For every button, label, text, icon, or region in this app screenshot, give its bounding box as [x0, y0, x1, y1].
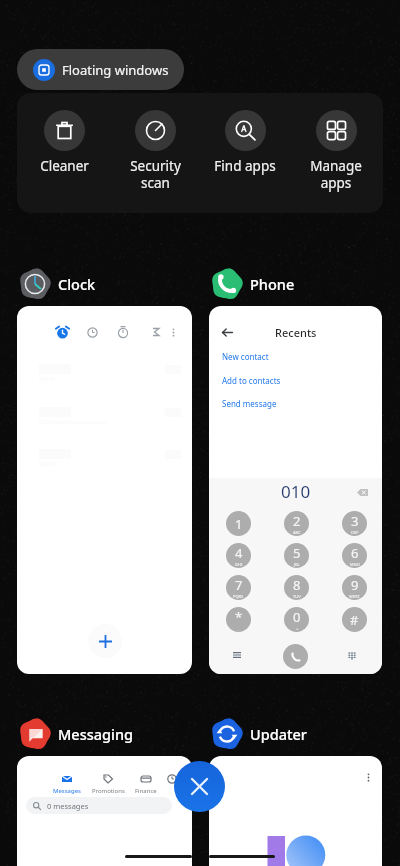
staticText: MNO [350, 562, 360, 567]
button[interactable]: Messaging [17, 712, 134, 756]
staticText: 8 [293, 576, 301, 594]
staticText: Manage apps [310, 157, 362, 192]
staticText: JKL [294, 562, 300, 567]
button[interactable]: Security scan [112, 93, 198, 192]
button[interactable]: Promotions [88, 774, 128, 795]
staticText: 1 [235, 515, 243, 533]
button[interactable]: Call history [227, 645, 247, 665]
button[interactable]: More options [209, 756, 382, 866]
button[interactable]: 3 [342, 511, 367, 536]
button[interactable]: * [226, 607, 251, 632]
staticText: 9 [351, 576, 359, 594]
button[interactable]: Find apps [202, 93, 288, 175]
staticText: 4 [235, 544, 243, 562]
staticText: PQRS [233, 594, 244, 599]
staticText: * [235, 608, 243, 626]
button[interactable] [152, 774, 192, 787]
staticText: 010 [281, 480, 311, 503]
staticText: WXYZ [349, 594, 360, 599]
staticText: TUV [293, 594, 301, 599]
button[interactable]: 9 [342, 575, 367, 600]
button[interactable]: Add alarm [88, 624, 122, 658]
button[interactable]: Search messages [26, 797, 172, 814]
button[interactable]: 0 [284, 607, 309, 632]
staticText: 7 [235, 576, 243, 594]
button[interactable]: Manage apps [293, 93, 379, 192]
button[interactable]: More options [161, 320, 185, 344]
staticText: 0 messages [47, 801, 89, 811]
button[interactable]: 2 [284, 511, 309, 536]
button[interactable]: 8 [284, 575, 309, 600]
staticText: GHI [235, 562, 243, 567]
staticText: Cleaner [40, 157, 89, 175]
staticText: Messaging [58, 724, 134, 744]
button[interactable]: # [342, 607, 367, 632]
staticText: + [296, 626, 299, 631]
button[interactable]: More options [361, 770, 375, 784]
button[interactable]: 6 [342, 543, 367, 568]
staticText: 0 [293, 608, 301, 626]
staticText: Phone [250, 274, 295, 294]
button[interactable]: Phone [209, 262, 295, 306]
staticText: Promotions [92, 787, 125, 795]
button[interactable]: Stopwatch [111, 320, 135, 344]
button[interactable]: Call [283, 644, 308, 669]
staticText: Updater [250, 724, 307, 744]
button[interactable]: Close all [174, 761, 225, 812]
button[interactable]: Alarm [17, 306, 192, 674]
staticText: Security scan [130, 157, 181, 192]
button[interactable]: Floating windows [17, 49, 184, 90]
button[interactable]: Messages [47, 774, 87, 795]
staticText: DEF [351, 530, 359, 535]
staticText: 3 [351, 512, 359, 530]
button[interactable]: Messages [17, 756, 192, 866]
button[interactable]: Alarm [50, 320, 74, 344]
staticText: 2 [293, 512, 301, 530]
button[interactable]: Finance [126, 774, 166, 795]
staticText: New contact [222, 351, 269, 362]
staticText: 5 [293, 544, 301, 562]
staticText: Add to contacts [222, 375, 281, 386]
staticText: Floating windows [62, 61, 169, 79]
button[interactable]: Send message [222, 398, 277, 409]
button[interactable]: 4 [226, 543, 251, 568]
button[interactable]: Clock [17, 262, 96, 306]
button[interactable]: Clock [80, 320, 104, 344]
button[interactable]: 5 [284, 543, 309, 568]
button[interactable]: Backspace [355, 485, 369, 499]
staticText: Finance [135, 787, 157, 795]
button[interactable]: 1 [226, 511, 251, 536]
staticText: Send message [222, 398, 277, 409]
staticText: Messages [53, 787, 81, 795]
staticText: , [238, 626, 240, 631]
button[interactable]: New contact [222, 351, 269, 362]
button[interactable]: 7 [226, 575, 251, 600]
button[interactable]: Timer [144, 320, 168, 344]
button[interactable]: Add to contacts [222, 375, 281, 386]
button[interactable]: Keypad [342, 645, 362, 665]
staticText: # [350, 611, 359, 629]
staticText: 6 [351, 544, 359, 562]
button[interactable]: Updater [209, 712, 307, 756]
staticText: ABC [293, 530, 301, 535]
button[interactable]: Cleaner [21, 93, 107, 175]
staticText: Clock [58, 274, 96, 294]
staticText: Find apps [214, 157, 276, 175]
button[interactable]: Recents [209, 306, 382, 674]
staticText: Recents [275, 325, 317, 340]
